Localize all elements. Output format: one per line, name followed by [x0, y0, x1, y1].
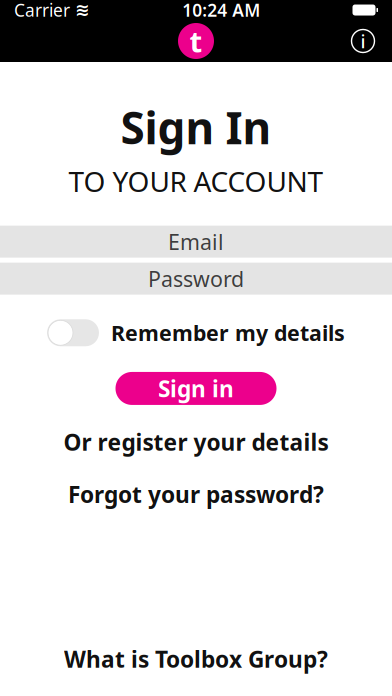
button[interactable]: Remember my details	[47, 319, 345, 347]
staticText: Forgot your password?	[68, 479, 324, 509]
staticText: Sign In	[120, 98, 271, 156]
staticText: Remember my details	[111, 319, 345, 347]
button[interactable]: Email	[0, 226, 392, 258]
button[interactable]: Toolbox Group home	[174, 20, 218, 62]
staticText: ≋	[75, 0, 90, 20]
button[interactable]: Information	[342, 20, 384, 62]
staticText: Sign in	[158, 373, 234, 403]
staticText: Carrier	[14, 0, 70, 21]
button[interactable]: Or register your details	[53, 423, 338, 461]
staticText: TO YOUR ACCOUNT	[68, 162, 323, 200]
staticText: Password	[148, 264, 244, 293]
staticText: 10:24 AM	[182, 0, 260, 21]
staticText: i	[360, 29, 365, 53]
staticText: Or register your details	[63, 427, 328, 457]
button[interactable]: Forgot your password?	[58, 475, 334, 513]
button[interactable]: What is Toolbox Group?	[54, 640, 338, 678]
staticText: What is Toolbox Group?	[64, 644, 328, 674]
button[interactable]: Password	[0, 263, 392, 295]
staticText: Email	[168, 227, 224, 256]
button[interactable]: Sign in	[115, 372, 276, 405]
staticText: t	[189, 21, 202, 60]
